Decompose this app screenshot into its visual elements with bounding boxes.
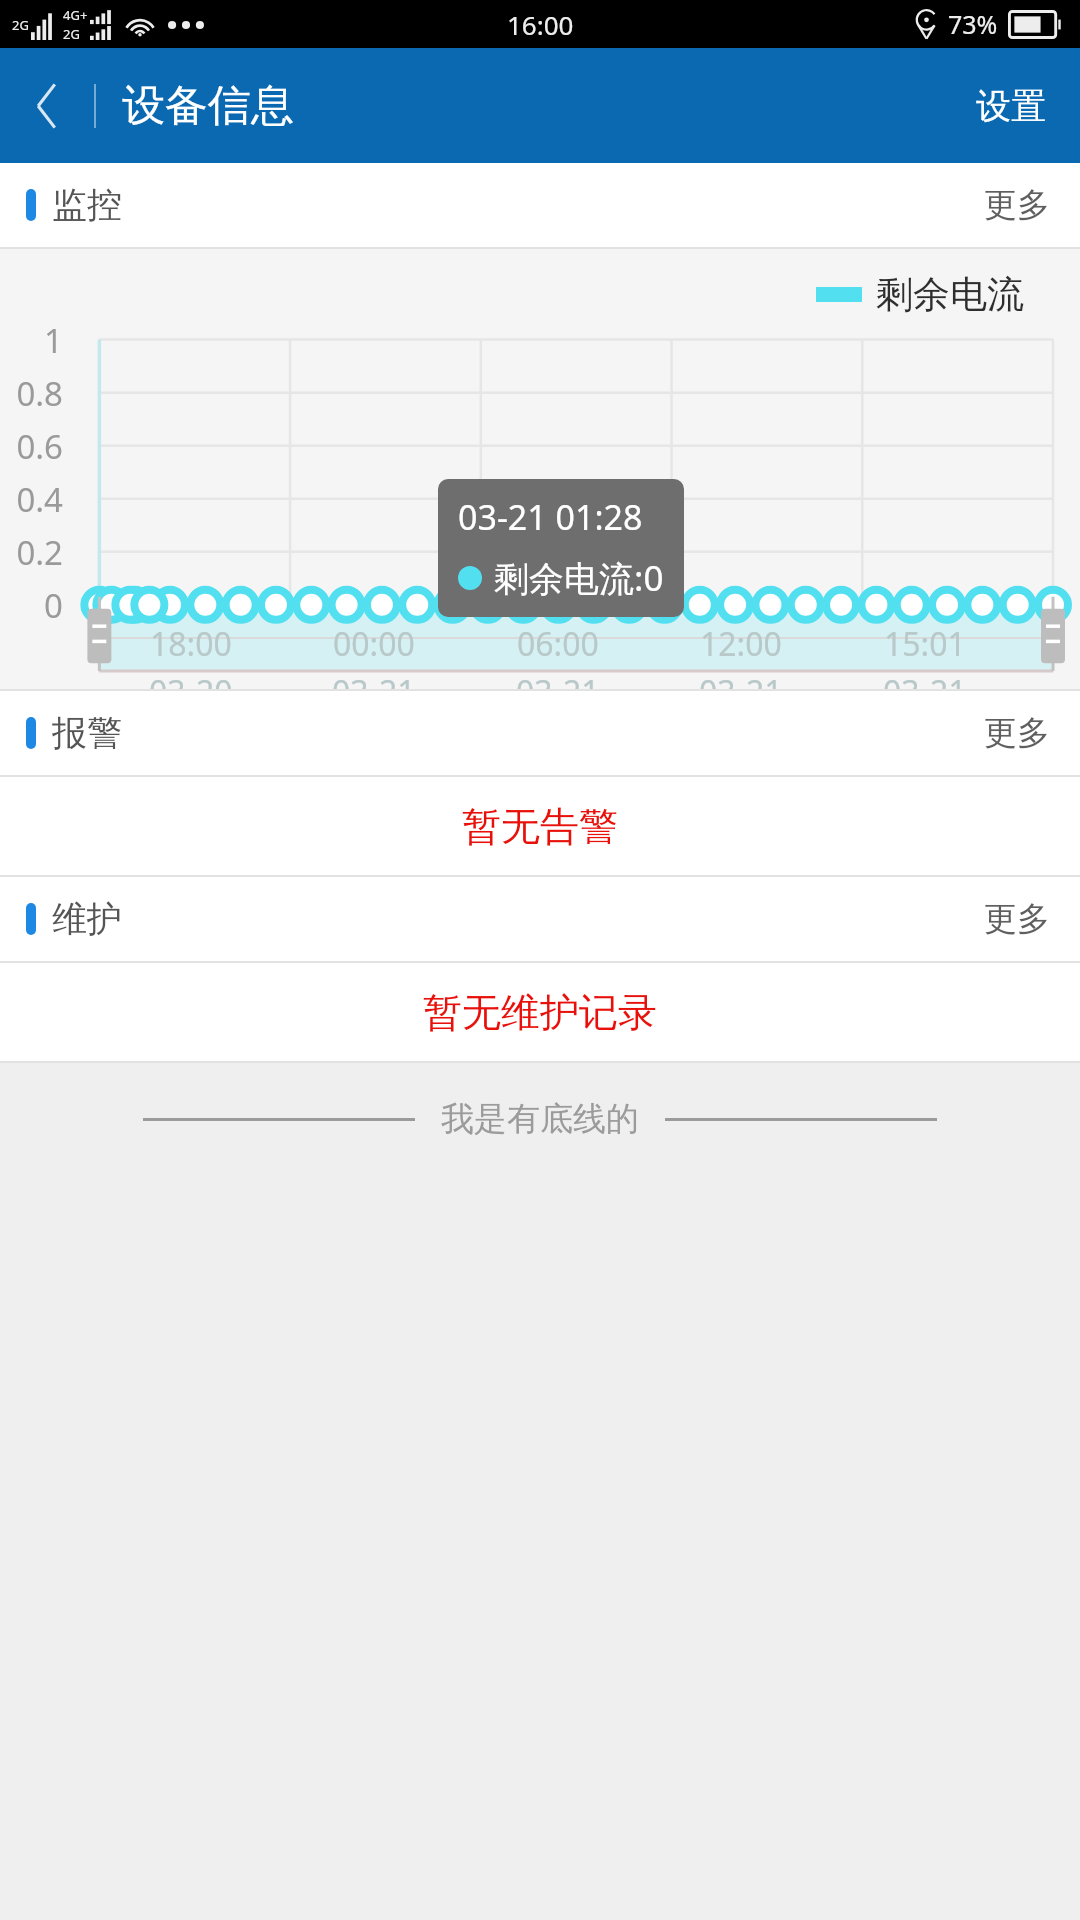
staticText: 03-20 — [149, 670, 233, 714]
staticText: 2G — [12, 16, 29, 34]
button[interactable]: Back — [0, 48, 94, 163]
staticText: 剩余电流 — [876, 271, 1024, 318]
button[interactable]: 监控 — [0, 163, 1080, 247]
staticText: 00:00 — [333, 622, 415, 666]
staticText: 更多 — [984, 898, 1050, 940]
staticText: 维护 — [52, 897, 122, 941]
staticText: 0.6 — [16, 424, 63, 469]
staticText: 06:00 — [517, 622, 599, 666]
staticText: 18:00 — [150, 622, 232, 666]
staticText: 报警 — [52, 711, 122, 755]
staticText: 0.4 — [16, 477, 63, 522]
button[interactable]: 暂无告警 — [0, 777, 1080, 875]
staticText: 4G+ — [63, 6, 88, 24]
staticText: 03-21 — [699, 670, 783, 714]
staticText: 03-21 — [883, 670, 967, 714]
staticText: 暂无维护记录 — [423, 988, 657, 1037]
staticText: 03-21 — [516, 670, 600, 714]
staticText: 0.2 — [16, 530, 63, 575]
button[interactable]: 维护 — [0, 877, 1080, 961]
staticText: 0 — [44, 583, 63, 628]
staticText: 暂无告警 — [462, 802, 618, 851]
staticText: 设置 — [976, 84, 1046, 128]
button[interactable]: 设置 — [942, 48, 1080, 163]
staticText: 2G — [63, 25, 80, 43]
staticText: 剩余电流:0 — [494, 554, 664, 602]
staticText: 03-21 — [332, 670, 416, 714]
staticText: 16:00 — [507, 7, 574, 42]
staticText: 我是有底线的 — [441, 1098, 639, 1140]
staticText: 0.8 — [16, 371, 63, 416]
staticText: 73% — [948, 7, 998, 41]
staticText: 15:01 — [884, 622, 966, 666]
staticText: 12:00 — [700, 622, 782, 666]
staticText: 更多 — [984, 712, 1050, 754]
staticText: 更多 — [984, 184, 1050, 226]
button[interactable]: 报警 — [0, 691, 1080, 775]
button[interactable]: 暂无维护记录 — [0, 963, 1080, 1061]
staticText: 监控 — [52, 183, 122, 227]
staticText: 设备信息 — [122, 79, 294, 133]
staticText: 1 — [44, 318, 63, 363]
staticText: 03-21 01:28 — [458, 494, 643, 540]
